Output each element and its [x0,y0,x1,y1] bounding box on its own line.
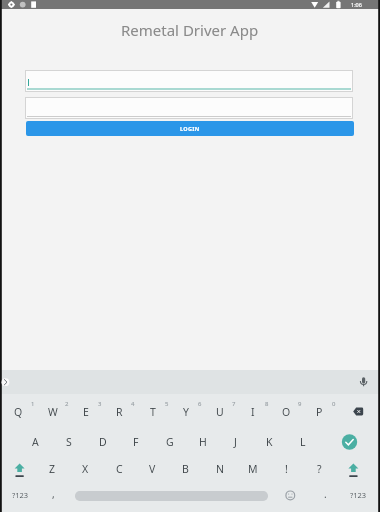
staticText: . [324,487,327,501]
staticText: , [52,487,55,501]
staticText: LOGIN [180,125,200,132]
staticText: G [166,435,174,449]
button[interactable]: J [219,427,252,456]
staticText: Q [14,405,23,419]
button[interactable]: R [103,397,136,426]
button[interactable]: Z [36,454,69,483]
button[interactable]: M [236,454,269,483]
staticText: H [199,435,207,449]
staticText: W [48,405,58,419]
staticText: 1 [31,400,35,408]
staticText: J [234,435,237,449]
button[interactable]: S [52,427,85,456]
button[interactable]: ? [303,454,336,483]
button[interactable]: W [36,397,69,426]
staticText: ?123 [12,490,29,500]
button[interactable]: E [69,397,102,426]
staticText: V [149,462,156,476]
button[interactable]: K [253,427,286,456]
button[interactable]: ! [270,454,303,483]
button[interactable]: P [303,397,336,426]
staticText: T [150,405,156,419]
staticText: I [251,405,255,419]
button[interactable]: V [136,454,169,483]
staticText: N [216,462,224,476]
staticText: X [82,462,89,476]
button[interactable] [25,70,353,92]
staticText: D [99,435,107,449]
button[interactable]: L [286,427,319,456]
button[interactable] [25,97,353,119]
staticText: R [116,405,123,419]
button[interactable]: D [86,427,119,456]
staticText: U [216,405,224,419]
staticText: 3 [98,400,102,408]
staticText: 2 [65,400,69,408]
button[interactable]: A [19,427,52,456]
button[interactable]: H [186,427,219,456]
staticText: B [182,462,189,476]
staticText: ! [285,462,288,476]
staticText: 4 [131,400,135,408]
button[interactable]: LOGIN [26,121,354,136]
staticText: P [316,405,323,419]
staticText: Y [183,405,189,419]
staticText: 9 [298,400,302,408]
button[interactable]: F [119,427,152,456]
staticText: S [66,435,72,449]
staticText: Z [49,462,56,476]
staticText: 1:06 [351,1,362,8]
staticText: K [266,435,273,449]
staticText: C [116,462,123,476]
staticText: 0 [332,400,336,408]
staticText: O [282,405,291,419]
staticText: E [83,405,89,419]
staticText: A [32,435,39,449]
button[interactable]: U [203,397,236,426]
button[interactable]: G [153,427,186,456]
button[interactable]: T [136,397,169,426]
staticText: 6 [198,400,202,408]
staticText: ?123 [350,490,367,500]
staticText: 7 [232,400,236,408]
button[interactable]: Y [169,397,202,426]
button[interactable]: B [169,454,202,483]
button[interactable]: O [270,397,303,426]
button[interactable]: I [236,397,269,426]
staticText: ? [317,462,322,476]
staticText: 5 [165,400,169,408]
button[interactable]: N [203,454,236,483]
staticText: L [300,435,306,449]
staticText: Remetal Driver App [121,20,259,40]
button[interactable]: Q [2,397,35,426]
button[interactable]: C [103,454,136,483]
button[interactable]: X [69,454,102,483]
staticText: M [248,462,258,476]
staticText: F [133,435,139,449]
staticText: 8 [265,400,269,408]
